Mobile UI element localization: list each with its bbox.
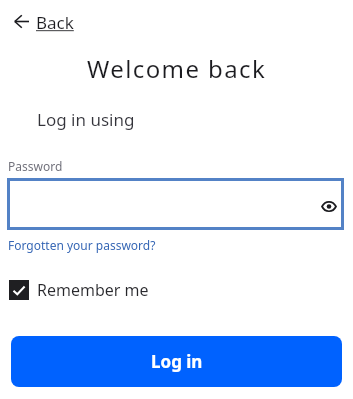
- button[interactable]: Back: [12, 9, 76, 36]
- button[interactable]: Show password: [7, 178, 344, 230]
- staticText: Remember me: [37, 279, 149, 301]
- button[interactable]: Forgotten your password?: [8, 237, 156, 253]
- staticText: Log in: [151, 350, 203, 373]
- staticText: Password: [8, 158, 63, 174]
- other: Back: [14, 15, 29, 28]
- staticText: Welcome back: [87, 52, 267, 85]
- button[interactable]: Log in: [11, 336, 342, 387]
- staticText: Back: [36, 11, 74, 34]
- button[interactable]: Remember me: [9, 279, 149, 301]
- staticText: Log in using: [37, 108, 135, 131]
- button[interactable]: Show password: [317, 192, 341, 216]
